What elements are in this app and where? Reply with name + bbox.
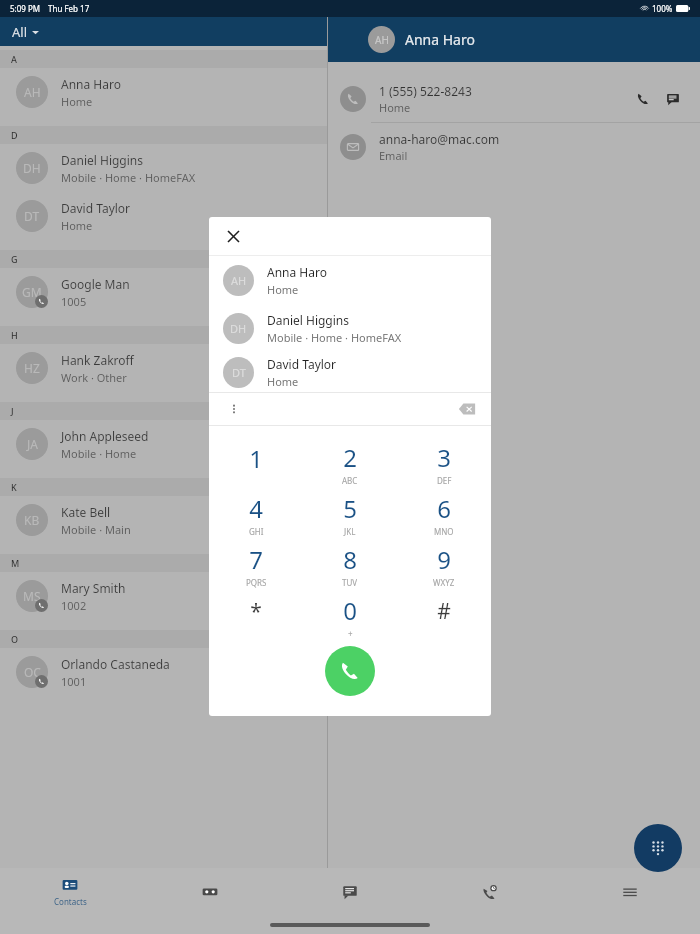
button[interactable]: JA [0,420,327,468]
button[interactable]: 5 [303,489,397,540]
staticText: AH [231,273,247,288]
staticText: Anna Haro [61,76,121,92]
staticText: J [11,405,14,417]
staticText: 2 [343,441,357,474]
staticText: Email [379,148,408,163]
staticText: Thu Feb 17 [48,3,90,14]
staticText: OC [24,664,41,680]
button[interactable]: All [12,23,39,41]
button[interactable]: AH [209,256,491,304]
staticText: John Appleseed [61,428,149,444]
button[interactable]: DT [209,352,491,392]
staticText: DEF [437,475,452,486]
staticText: Anna Haro [267,264,327,280]
button[interactable]: Open dialpad [634,824,682,872]
staticText: 6 [437,492,451,525]
staticText: KB [24,512,40,528]
staticText: Home [61,218,93,233]
button[interactable]: HZ [0,344,327,392]
staticText: D [11,129,18,141]
staticText: Home [267,282,299,297]
button[interactable]: Messages [280,868,420,916]
button[interactable]: GM [0,268,327,316]
button[interactable]: * [209,591,303,642]
button[interactable]: MS [0,572,327,620]
staticText: * [250,597,262,626]
button[interactable]: 1 (555) 522-8243 [328,75,700,122]
staticText: # [437,597,451,626]
button[interactable]: DH [0,144,327,192]
staticText: Mary Smith [61,580,126,596]
staticText: K [11,481,17,493]
staticText: Mobile · Home · HomeFAX [267,330,402,345]
button[interactable]: 4 [209,489,303,540]
staticText: DH [230,321,247,336]
staticText: 1001 [61,674,87,689]
staticText: DH [23,160,41,176]
staticText: TUV [342,577,358,588]
staticText: Contacts [54,896,87,907]
button[interactable]: 6 [397,489,491,540]
button[interactable]: 9 [397,540,491,591]
staticText: Google Man [61,276,130,292]
staticText: 1 [249,442,263,475]
button[interactable]: 7 [209,540,303,591]
button[interactable]: 0 [303,591,397,642]
button[interactable]: DH [209,304,491,352]
staticText: PQRS [246,577,267,588]
button[interactable]: Call [630,86,656,112]
staticText: AH [375,33,389,47]
button[interactable]: Contacts [0,868,140,916]
staticText: 100% [652,3,673,14]
button[interactable]: 8 [303,540,397,591]
staticText: GHI [249,526,264,537]
button[interactable]: Recents [420,868,560,916]
staticText: + [348,628,353,639]
button[interactable]: More [560,868,700,916]
staticText: Work · Other [61,370,127,385]
button[interactable]: DT [0,192,327,240]
staticText: G [11,253,18,265]
staticText: Daniel Higgins [61,152,143,168]
staticText: H [11,329,18,341]
staticText: 9 [437,543,451,576]
staticText: Daniel Higgins [267,312,349,328]
button[interactable]: KB [0,496,327,544]
staticText: 4 [249,492,263,525]
button[interactable]: Message [660,86,686,112]
button[interactable]: Close [218,221,248,251]
button[interactable]: AH [0,68,327,116]
button[interactable]: Call [325,646,375,696]
button[interactable]: 2 [303,438,397,489]
staticText: 1005 [61,294,87,309]
button[interactable]: # [397,591,491,642]
staticText: Home [267,374,299,389]
button[interactable]: 1 [209,438,303,489]
staticText: anna-haro@mac.com [379,131,500,147]
staticText: WXYZ [433,577,455,588]
staticText: HZ [24,360,40,376]
staticText: 8 [343,543,357,576]
staticText: M [11,557,20,569]
button[interactable]: 3 [397,438,491,489]
staticText: ABC [342,475,358,486]
staticText: JKL [344,526,356,537]
staticText: DT [232,365,246,380]
staticText: DT [24,208,40,224]
staticText: Mobile · Home [61,446,137,461]
staticText: Kate Bell [61,504,111,520]
button[interactable]: OC [0,648,327,696]
button[interactable]: More options [222,397,246,421]
staticText: All [12,23,28,41]
staticText: 3 [437,441,451,474]
button[interactable]: Voicemail [140,868,280,916]
staticText: David Taylor [267,356,337,372]
staticText: AH [24,84,41,100]
button[interactable]: Delete [454,396,480,422]
button[interactable]: anna-haro@mac.com [328,123,700,170]
staticText: Home [379,100,411,115]
staticText: JA [27,436,38,452]
staticText: 0 [343,594,357,627]
staticText: David Taylor [61,200,131,216]
staticText: Hank Zakroff [61,352,134,368]
